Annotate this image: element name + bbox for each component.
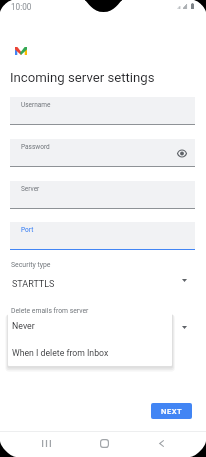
staticText: Incoming server settings <box>10 70 155 85</box>
button[interactable]: Port <box>10 222 195 250</box>
staticText: Username <box>21 101 51 109</box>
button[interactable]: Password <box>10 139 195 167</box>
button[interactable]: Home <box>84 431 124 455</box>
button[interactable]: Show password <box>175 147 188 160</box>
staticText: 10:00 <box>11 2 32 12</box>
button[interactable]: NEXT <box>151 403 192 419</box>
staticText: Security type <box>11 261 51 269</box>
staticText: Never <box>12 321 35 331</box>
staticText: When I delete from Inbox <box>12 348 109 358</box>
staticText: Delete emails from server <box>11 307 89 315</box>
staticText: Password <box>21 143 50 151</box>
button[interactable]: Username <box>10 97 195 125</box>
button[interactable]: Security type <box>0 257 206 295</box>
button[interactable]: Delete emails from server <box>0 303 206 341</box>
staticText: Server <box>21 185 40 193</box>
staticText: Port <box>21 226 34 234</box>
button[interactable]: Server <box>10 181 195 209</box>
button[interactable]: When I delete from Inbox <box>8 340 172 366</box>
staticText: NEXT <box>161 407 183 416</box>
button[interactable]: Back <box>141 431 181 455</box>
button[interactable]: Recent apps <box>26 431 66 455</box>
button[interactable]: Never <box>8 313 172 340</box>
staticText: STARTTLS <box>12 279 55 290</box>
